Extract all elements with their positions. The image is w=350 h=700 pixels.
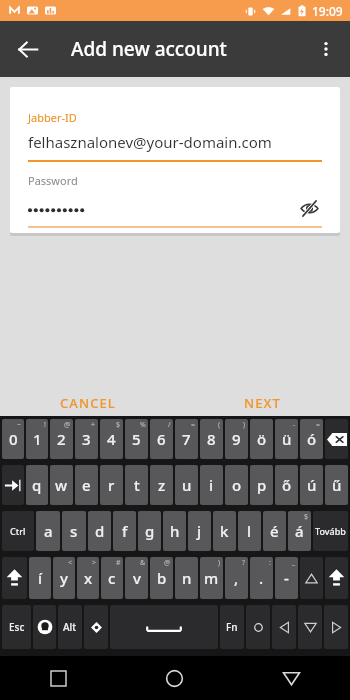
- staticText: -: [293, 420, 296, 430]
- button[interactable]: p: [250, 465, 273, 505]
- staticText: Jabber-ID: [28, 110, 77, 125]
- button[interactable]: d: [88, 511, 111, 551]
- staticText: 19:09: [312, 3, 343, 19]
- button[interactable]: x: [77, 557, 99, 599]
- button[interactable]: Tovább: [313, 511, 348, 551]
- button[interactable]: w: [50, 465, 73, 505]
- button[interactable]: Circle: [246, 605, 270, 649]
- button[interactable]: v: [125, 557, 148, 599]
- button[interactable]: 9: [225, 419, 248, 459]
- button[interactable]: 7: [175, 419, 198, 459]
- staticText: +: [91, 420, 96, 430]
- button[interactable]: -: [275, 557, 298, 599]
- staticText: ő: [282, 475, 292, 495]
- button[interactable]: b: [150, 557, 173, 599]
- button[interactable]: é: [263, 511, 286, 551]
- staticText: Tovább: [315, 525, 346, 537]
- staticText: ): [243, 420, 246, 430]
- button[interactable]: [28, 199, 263, 217]
- staticText: $: [116, 420, 121, 430]
- button[interactable]: Tab: [2, 465, 24, 505]
- staticText: k: [220, 521, 229, 541]
- button[interactable]: .: [250, 557, 273, 599]
- button[interactable]: 2: [50, 419, 73, 459]
- staticText: u: [182, 475, 192, 495]
- button[interactable]: NEXT: [232, 386, 293, 416]
- button[interactable]: Settings: [84, 605, 108, 649]
- staticText: m: [204, 568, 219, 588]
- button[interactable]: í: [29, 557, 51, 599]
- button[interactable]: u: [175, 465, 198, 505]
- button[interactable]: r: [100, 465, 123, 505]
- staticText: ü: [282, 429, 292, 449]
- button[interactable]: c: [101, 557, 123, 599]
- button[interactable]: f: [113, 511, 136, 551]
- button[interactable]: e: [75, 465, 98, 505]
- button[interactable]: Fn: [220, 605, 244, 649]
- button[interactable]: Voice input: [33, 605, 56, 649]
- button[interactable]: Show password: [296, 197, 322, 219]
- staticText: h: [170, 521, 180, 541]
- button[interactable]: Esc: [2, 605, 31, 649]
- staticText: /: [168, 420, 171, 430]
- button[interactable]: Shift: [2, 557, 27, 599]
- button[interactable]: Down: [298, 605, 322, 649]
- button[interactable]: Back: [8, 29, 48, 69]
- button[interactable]: 1: [26, 419, 48, 459]
- button[interactable]: Up: [300, 557, 323, 599]
- button[interactable]: Right: [324, 605, 348, 649]
- button[interactable]: k: [213, 511, 236, 551]
- button[interactable]: s: [62, 511, 86, 551]
- button[interactable]: m: [200, 557, 223, 599]
- button[interactable]: Home: [116, 656, 233, 700]
- staticText: p: [257, 475, 267, 495]
- button[interactable]: ű: [325, 465, 348, 505]
- button[interactable]: Recent apps: [0, 656, 116, 700]
- button[interactable]: Space: [110, 605, 218, 649]
- button[interactable]: 0: [2, 419, 24, 459]
- button[interactable]: felhasznalonev@your-domain.com: [28, 132, 322, 152]
- button[interactable]: Alt: [58, 605, 82, 649]
- staticText: %: [140, 420, 146, 430]
- button[interactable]: 5: [125, 419, 148, 459]
- staticText: ó: [307, 429, 317, 449]
- button[interactable]: a: [36, 511, 60, 551]
- button[interactable]: 6: [150, 419, 173, 459]
- button[interactable]: CANCEL: [48, 386, 128, 416]
- button[interactable]: o: [225, 465, 248, 505]
- staticText: s: [70, 521, 78, 541]
- staticText: t: [134, 475, 140, 495]
- button[interactable]: Backspace: [325, 419, 348, 459]
- button[interactable]: á: [288, 511, 311, 551]
- button[interactable]: Shift: [325, 557, 348, 599]
- button[interactable]: 4: [100, 419, 123, 459]
- button[interactable]: 3: [75, 419, 98, 459]
- button[interactable]: q: [26, 465, 48, 505]
- button[interactable]: j: [188, 511, 211, 551]
- button[interactable]: 8: [200, 419, 223, 459]
- button[interactable]: i: [200, 465, 223, 505]
- button[interactable]: Back: [233, 656, 350, 700]
- button[interactable]: t: [125, 465, 148, 505]
- button[interactable]: ú: [300, 465, 323, 505]
- button[interactable]: ü: [275, 419, 298, 459]
- button[interactable]: Left: [272, 605, 296, 649]
- button[interactable]: ö: [250, 419, 273, 459]
- button[interactable]: Ctrl: [2, 511, 34, 551]
- staticText: 3: [82, 429, 91, 449]
- button[interactable]: n: [175, 557, 198, 599]
- staticText: ú: [307, 475, 317, 495]
- button[interactable]: ,: [225, 557, 248, 599]
- staticText: 8: [207, 429, 216, 449]
- button[interactable]: h: [163, 511, 186, 551]
- button[interactable]: ő: [275, 465, 298, 505]
- button[interactable]: z: [150, 465, 173, 505]
- button[interactable]: y: [53, 557, 75, 599]
- button[interactable]: More options: [306, 29, 346, 69]
- staticText: í: [38, 568, 43, 588]
- staticText: felhasznalonev@your-domain.com: [28, 132, 272, 152]
- button[interactable]: g: [138, 511, 161, 551]
- staticText: 5: [132, 429, 141, 449]
- button[interactable]: l: [238, 511, 261, 551]
- button[interactable]: ó: [300, 419, 323, 459]
